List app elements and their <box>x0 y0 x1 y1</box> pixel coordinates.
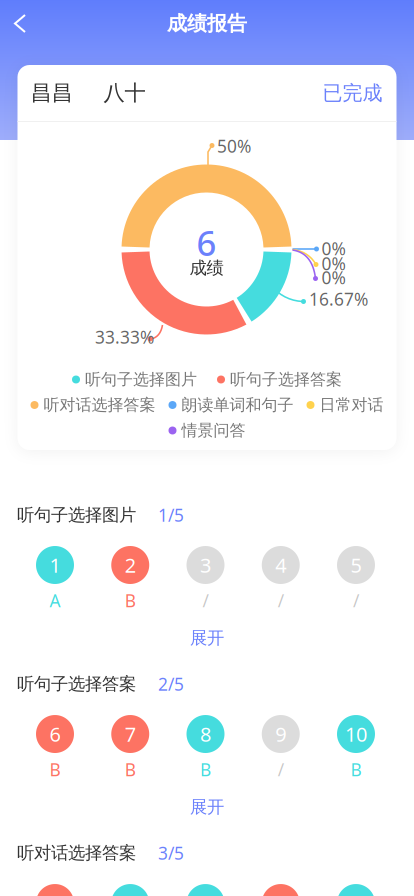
staticText: / <box>202 589 208 612</box>
staticText: 成绩 <box>189 257 223 279</box>
staticText: 9 <box>275 721 286 747</box>
staticText: 0% <box>321 266 345 289</box>
staticText: 日常对话 <box>319 395 383 415</box>
staticText: 展开 <box>190 627 224 649</box>
staticText: B <box>49 758 60 781</box>
staticText: 8 <box>200 721 211 747</box>
staticText: 成绩报告 <box>167 11 247 36</box>
staticText: 八十 <box>103 80 145 106</box>
staticText: 6 <box>49 721 60 747</box>
staticText: 昌昌 <box>30 80 72 106</box>
staticText: 10 <box>345 721 367 747</box>
staticText: 听句子选择答案 <box>230 370 342 389</box>
staticText: 3 <box>200 552 211 578</box>
staticText: 1/5 <box>158 503 184 526</box>
staticText: 2 <box>125 552 136 578</box>
staticText: 2/5 <box>158 672 184 695</box>
staticText: 听句子选择图片 <box>85 370 197 389</box>
staticText: 33.33% <box>95 325 154 348</box>
staticText: 情景问答 <box>181 421 245 440</box>
staticText: 已完成 <box>322 81 382 105</box>
staticText: B <box>350 758 361 781</box>
staticText: B <box>125 758 136 781</box>
staticText: 5 <box>350 552 361 578</box>
staticText: 4 <box>275 552 286 578</box>
staticText: 展开 <box>190 796 224 818</box>
button[interactable]: 展开 <box>0 781 414 822</box>
button[interactable]: Back <box>0 0 42 47</box>
staticText: / <box>278 589 284 612</box>
button[interactable]: 展开 <box>0 612 414 653</box>
staticText: 听句子选择答案 <box>17 673 136 695</box>
staticText: 16.67% <box>309 287 368 310</box>
staticText: 3/5 <box>158 841 184 864</box>
staticText: 听句子选择图片 <box>17 504 136 526</box>
staticText: 1 <box>49 552 60 578</box>
staticText: 50% <box>217 134 251 157</box>
staticText: B <box>200 758 211 781</box>
staticText: 6 <box>196 219 216 265</box>
staticText: / <box>353 589 359 612</box>
staticText: 7 <box>125 721 136 747</box>
staticText: 朗读单词和句子 <box>181 395 293 415</box>
staticText: / <box>278 758 284 781</box>
staticText: 0% <box>321 237 345 260</box>
staticText: A <box>49 589 60 612</box>
staticText: 听对话选择答案 <box>43 395 155 415</box>
staticText: 0% <box>321 252 345 275</box>
staticText: 听对话选择答案 <box>17 842 136 864</box>
staticText: B <box>125 589 136 612</box>
